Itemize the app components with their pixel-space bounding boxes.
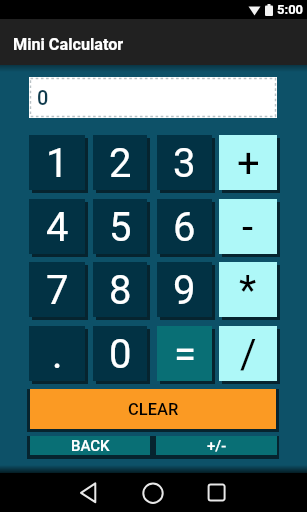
staticText: +/- <box>207 437 227 455</box>
staticText: 9 <box>173 267 196 314</box>
staticText: BACK <box>71 437 110 455</box>
button[interactable]: 0 <box>29 77 277 118</box>
staticText: / <box>240 331 257 378</box>
staticText: . <box>52 331 63 378</box>
button[interactable] <box>206 482 227 503</box>
button[interactable]: = <box>157 326 212 381</box>
button[interactable]: 9 <box>157 262 212 317</box>
button[interactable]: +/- <box>156 436 277 455</box>
button[interactable]: * <box>219 262 277 317</box>
button[interactable]: BACK <box>30 436 150 455</box>
button[interactable]: CLEAR <box>30 389 276 429</box>
button[interactable]: - <box>219 199 277 254</box>
staticText: 2 <box>109 140 132 187</box>
staticText: 4 <box>46 204 69 251</box>
button[interactable]: / <box>219 326 277 381</box>
button[interactable]: 6 <box>157 199 212 254</box>
button[interactable]: 7 <box>29 262 85 317</box>
staticText: - <box>242 204 254 251</box>
staticText: 7 <box>46 267 69 314</box>
staticText: 5:00 <box>277 2 304 17</box>
staticText: CLEAR <box>128 400 179 419</box>
button[interactable]: 4 <box>29 199 85 254</box>
button[interactable]: 3 <box>157 135 212 190</box>
button[interactable]: 8 <box>93 262 147 317</box>
staticText: 1 <box>46 140 69 187</box>
button[interactable]: 2 <box>93 135 147 190</box>
button[interactable] <box>142 482 164 504</box>
staticText: 0 <box>37 86 49 109</box>
staticText: 8 <box>109 267 132 314</box>
staticText: 0 <box>109 331 132 378</box>
button[interactable]: 1 <box>29 135 85 190</box>
staticText: + <box>237 140 260 187</box>
staticText: 3 <box>173 140 196 187</box>
button[interactable] <box>78 481 99 504</box>
staticText: Mini Calculator <box>13 35 124 54</box>
button[interactable]: 0 <box>93 326 147 381</box>
staticText: = <box>174 331 196 378</box>
button[interactable]: 5 <box>93 199 147 254</box>
staticText: 6 <box>173 204 196 251</box>
button[interactable]: . <box>29 326 85 381</box>
staticText: 5 <box>109 204 132 251</box>
staticText: * <box>239 267 257 314</box>
button[interactable]: + <box>219 135 277 190</box>
